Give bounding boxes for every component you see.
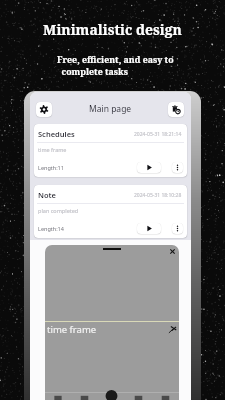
staticText: time frame (47, 323, 97, 336)
staticText: Length:11 (38, 164, 64, 171)
staticText: time frame (38, 146, 67, 153)
staticText: Length:14 (38, 225, 64, 232)
button[interactable]: Play (137, 162, 161, 173)
staticText: plan completed (38, 207, 79, 214)
staticText: 2024-05-31 18:10:28 (134, 192, 182, 199)
button[interactable]: Attach (125, 393, 152, 400)
staticText: Schedules (38, 129, 75, 139)
button[interactable]: Schedules (34, 124, 187, 177)
staticText: Main page (89, 103, 132, 115)
button[interactable]: More options (172, 223, 183, 234)
staticText: 2024-05-31 18:21:14 (134, 131, 182, 138)
button[interactable]: Redo (71, 393, 98, 400)
button[interactable]: Note (34, 185, 187, 238)
button[interactable]: Menu (152, 393, 179, 400)
button[interactable]: Undo (45, 393, 71, 400)
button[interactable]: Close (167, 246, 178, 257)
button[interactable]: Pin (168, 325, 177, 334)
button[interactable]: Settings (36, 102, 52, 117)
button[interactable]: Record (98, 393, 125, 400)
button[interactable]: Play (137, 223, 161, 234)
button[interactable]: More options (172, 162, 183, 173)
button[interactable]: Deleted items (168, 102, 184, 117)
staticText: Minimalistic design (0, 20, 225, 39)
staticText: Free, efficient, and easy to complete ta… (57, 54, 215, 77)
staticText: Note (38, 190, 57, 200)
